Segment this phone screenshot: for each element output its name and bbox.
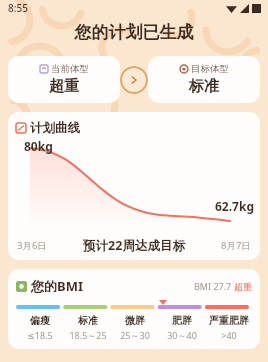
button[interactable]: 目标体型: [148, 56, 260, 103]
staticText: 预计22周达成目标: [47, 237, 221, 254]
staticText: 25～30: [120, 329, 150, 341]
staticText: BMI 27.7: [194, 280, 234, 292]
staticText: 您的计划已生成: [0, 22, 268, 43]
staticText: 超重: [49, 77, 79, 96]
button[interactable]: 切换体型: [120, 66, 148, 94]
staticText: 肥胖: [172, 314, 192, 327]
staticText: 超重: [234, 281, 252, 292]
staticText: 标准: [189, 77, 219, 96]
button[interactable]: 计划曲线: [8, 112, 260, 260]
button[interactable]: 您的BMI: [8, 269, 260, 349]
staticText: 您的BMI: [31, 277, 83, 295]
staticText: 微胖: [125, 314, 145, 327]
staticText: 3月6日: [17, 239, 47, 252]
staticText: 8:55: [8, 1, 28, 15]
staticText: >40: [221, 329, 237, 341]
staticText: 计划曲线: [30, 120, 80, 136]
staticText: 18.5～25: [69, 329, 107, 341]
staticText: 偏瘦: [30, 314, 50, 327]
staticText: 标准: [78, 314, 98, 327]
staticText: 62.7kg: [215, 198, 254, 214]
staticText: ≤18.5: [27, 329, 53, 341]
staticText: 当前体型: [51, 63, 89, 75]
button[interactable]: 当前体型: [8, 56, 120, 103]
staticText: 目标体型: [191, 63, 229, 75]
staticText: 8月7日: [221, 239, 251, 252]
staticText: 80kg: [24, 138, 53, 154]
staticText: 30～40: [167, 329, 197, 341]
staticText: 严重肥胖: [209, 314, 249, 327]
